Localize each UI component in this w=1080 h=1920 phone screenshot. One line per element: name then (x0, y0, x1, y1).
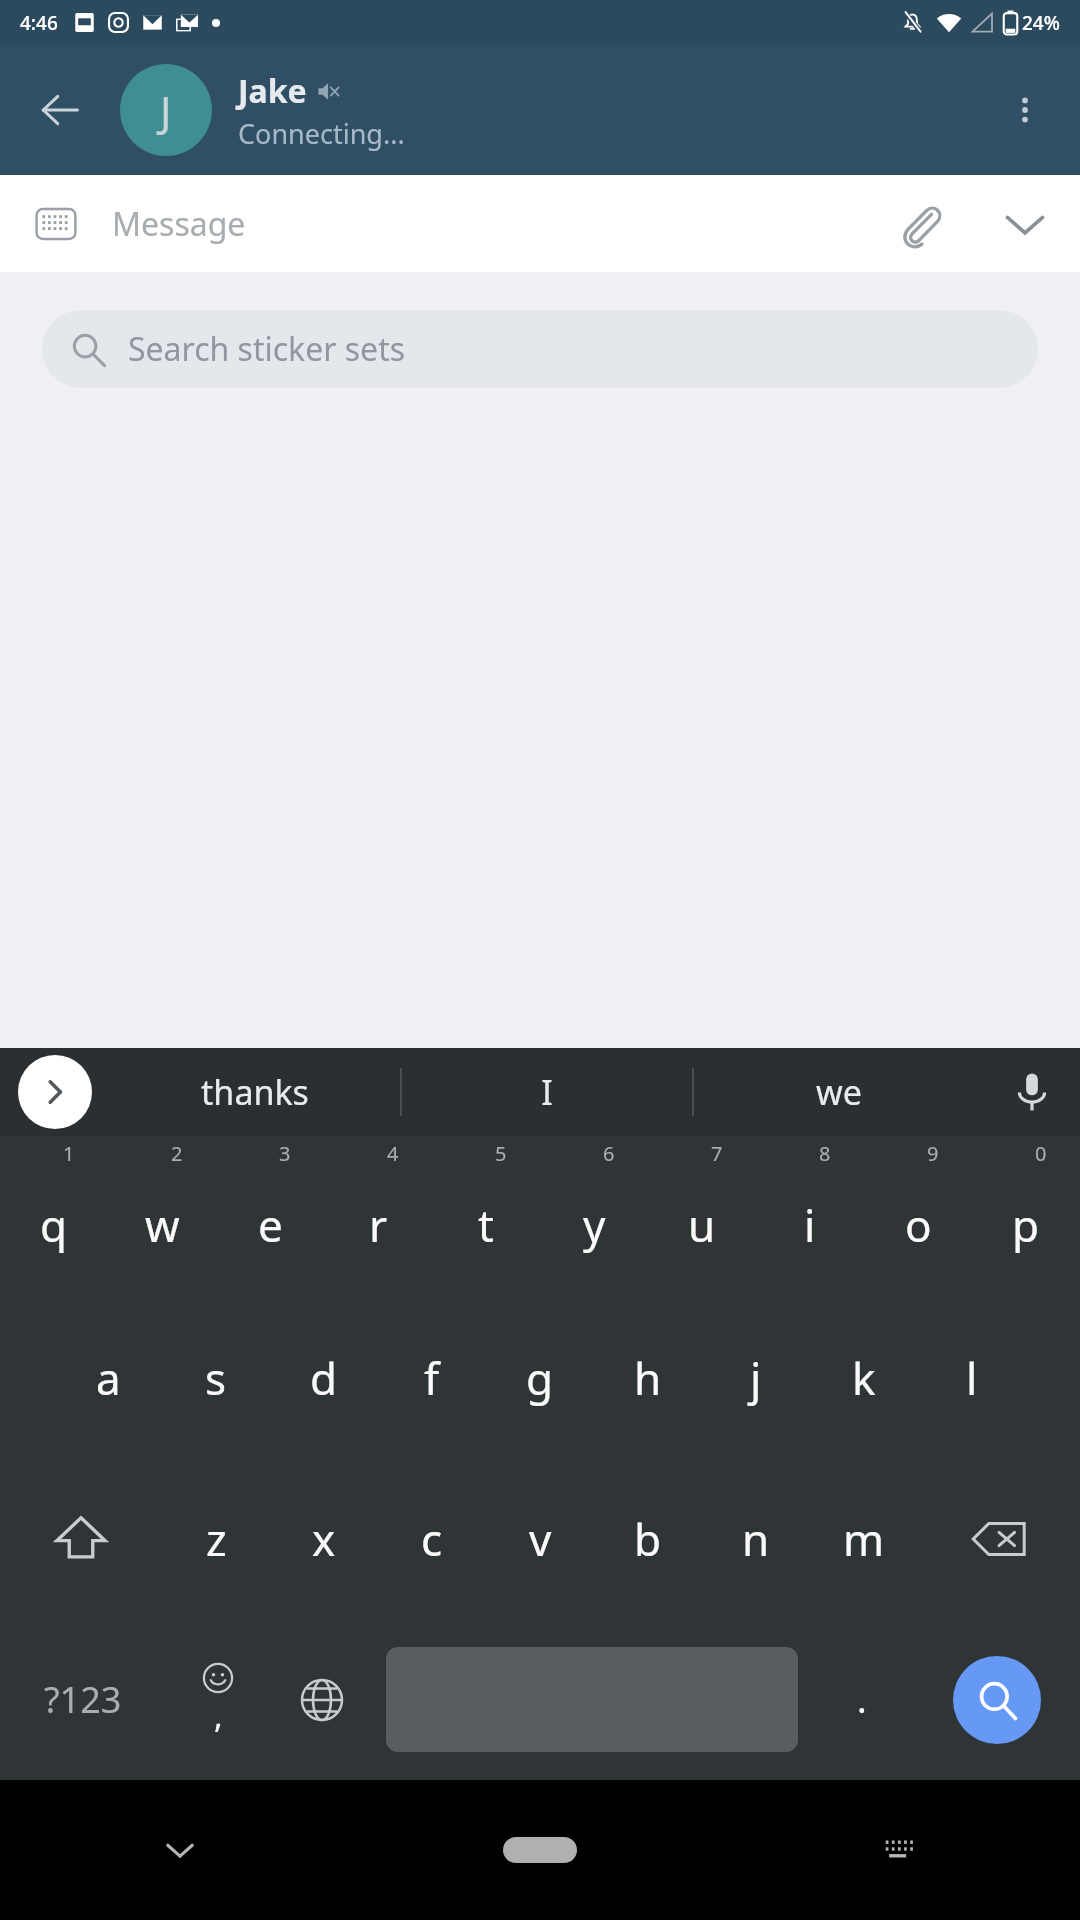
staticText: 6 (603, 1140, 615, 1167)
button[interactable]: Emoji (166, 1619, 270, 1780)
staticText: q (40, 1195, 68, 1255)
staticText: i (804, 1195, 816, 1255)
staticText: we (816, 1069, 862, 1115)
staticText: Connecting... (238, 115, 405, 152)
button[interactable]: Hide keyboard (0, 1780, 360, 1920)
button[interactable]: Change language (270, 1619, 374, 1780)
button[interactable]: Shift (0, 1458, 162, 1619)
staticText: Search sticker sets (128, 327, 406, 371)
button[interactable]: s (162, 1297, 270, 1458)
button[interactable]: we (694, 1048, 984, 1136)
staticText: b (634, 1509, 662, 1569)
button[interactable]: b (594, 1458, 702, 1619)
button[interactable]: y (540, 1136, 648, 1297)
staticText: c (421, 1509, 443, 1569)
staticText: u (688, 1195, 716, 1255)
staticText: I (541, 1069, 553, 1115)
staticText: k (852, 1348, 876, 1408)
button[interactable]: Keyboard (0, 175, 112, 272)
staticText: w (145, 1195, 180, 1255)
staticText: 1 (63, 1140, 75, 1167)
staticText: , (214, 1694, 223, 1738)
button[interactable]: r (324, 1136, 432, 1297)
button[interactable]: J (120, 64, 212, 156)
staticText: 9 (927, 1140, 939, 1167)
button[interactable]: a (54, 1297, 162, 1458)
staticText: Jake (238, 69, 307, 113)
staticText: Message (112, 202, 246, 246)
staticText: f (424, 1348, 440, 1408)
button[interactable]: w (108, 1136, 216, 1297)
staticText: m (843, 1509, 885, 1569)
button[interactable]: ?123 (0, 1619, 166, 1780)
staticText: z (206, 1509, 227, 1569)
button[interactable]: I (402, 1048, 692, 1136)
staticText: J (160, 82, 172, 139)
staticText: j (750, 1348, 762, 1408)
button[interactable]: Search sticker sets (42, 310, 1038, 388)
staticText: 4:46 (20, 10, 58, 36)
button[interactable]: h (594, 1297, 702, 1458)
button[interactable]: q (0, 1136, 108, 1297)
button[interactable]: Expand toolbar (18, 1055, 92, 1129)
button[interactable]: t (432, 1136, 540, 1297)
button[interactable]: Back (0, 45, 120, 175)
button[interactable]: j (702, 1297, 810, 1458)
button[interactable]: Switch keyboard (720, 1780, 1080, 1920)
staticText: x (312, 1509, 336, 1569)
staticText: a (96, 1348, 121, 1408)
button[interactable]: Backspace (918, 1458, 1080, 1619)
staticText: 3 (279, 1140, 291, 1167)
button[interactable]: Home (360, 1780, 720, 1920)
staticText: 24% (1022, 10, 1060, 36)
staticText: ?123 (44, 1675, 122, 1724)
button[interactable]: Message (112, 175, 870, 272)
button[interactable]: m (810, 1458, 918, 1619)
button[interactable]: p (972, 1136, 1080, 1297)
staticText: l (966, 1348, 978, 1408)
button[interactable]: v (486, 1458, 594, 1619)
staticText: 2 (171, 1140, 183, 1167)
staticText: g (526, 1348, 554, 1408)
button[interactable]: o (864, 1136, 972, 1297)
staticText: 7 (711, 1140, 723, 1167)
staticText: 8 (819, 1140, 831, 1167)
button[interactable]: z (162, 1458, 270, 1619)
button[interactable]: d (270, 1297, 378, 1458)
staticText: v (529, 1509, 552, 1569)
button[interactable]: Voice input (996, 1056, 1068, 1128)
staticText: h (634, 1348, 662, 1408)
staticText: o (905, 1195, 932, 1255)
staticText: 0 (1035, 1140, 1047, 1167)
button[interactable]: x (270, 1458, 378, 1619)
button[interactable]: i (756, 1136, 864, 1297)
button[interactable]: e (216, 1136, 324, 1297)
button[interactable]: k (810, 1297, 918, 1458)
button[interactable]: c (378, 1458, 486, 1619)
staticText: thanks (201, 1069, 309, 1115)
staticText: r (369, 1195, 388, 1255)
button[interactable]: f (378, 1297, 486, 1458)
button[interactable]: u (648, 1136, 756, 1297)
staticText: . (857, 1675, 867, 1724)
staticText: 5 (495, 1140, 507, 1167)
staticText: p (1012, 1195, 1040, 1255)
button[interactable]: g (486, 1297, 594, 1458)
staticText: t (478, 1195, 494, 1255)
button[interactable]: Search (953, 1656, 1041, 1744)
button[interactable]: Attach (870, 175, 970, 272)
button[interactable]: More options (970, 45, 1080, 175)
staticText: e (258, 1195, 283, 1255)
staticText: y (583, 1195, 606, 1255)
button[interactable]: Collapse panel (970, 175, 1080, 272)
staticText: s (205, 1348, 227, 1408)
button[interactable]: n (702, 1458, 810, 1619)
staticText: n (742, 1509, 770, 1569)
button[interactable]: l (918, 1297, 1026, 1458)
button[interactable]: Jake (238, 69, 970, 152)
staticText: d (310, 1348, 338, 1408)
staticText: 4 (387, 1140, 399, 1167)
button[interactable]: thanks (110, 1048, 400, 1136)
button[interactable]: . (810, 1619, 914, 1780)
